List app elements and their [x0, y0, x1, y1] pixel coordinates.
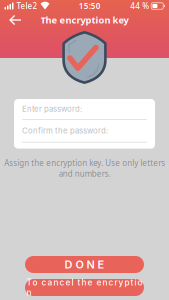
button[interactable]: Back [6, 10, 25, 29]
staticText: The encryption key [40, 14, 128, 26]
staticText: 44 % [130, 1, 149, 11]
staticText: Confirm the password: [22, 126, 108, 135]
staticText: 15:50 [79, 1, 101, 11]
staticText: T o c a n c e l t h e e n c r y p t i o … [26, 277, 142, 297]
staticText: Assign the encryption key. Use only lett… [4, 158, 165, 179]
button[interactable]: T o c a n c e l t h e e n c r y p t i o … [25, 279, 144, 296]
staticText: Enter password: [22, 104, 82, 114]
button[interactable]: D O N E [25, 256, 144, 273]
staticText: Tele2 [16, 1, 37, 11]
staticText: D O N E [64, 258, 104, 271]
